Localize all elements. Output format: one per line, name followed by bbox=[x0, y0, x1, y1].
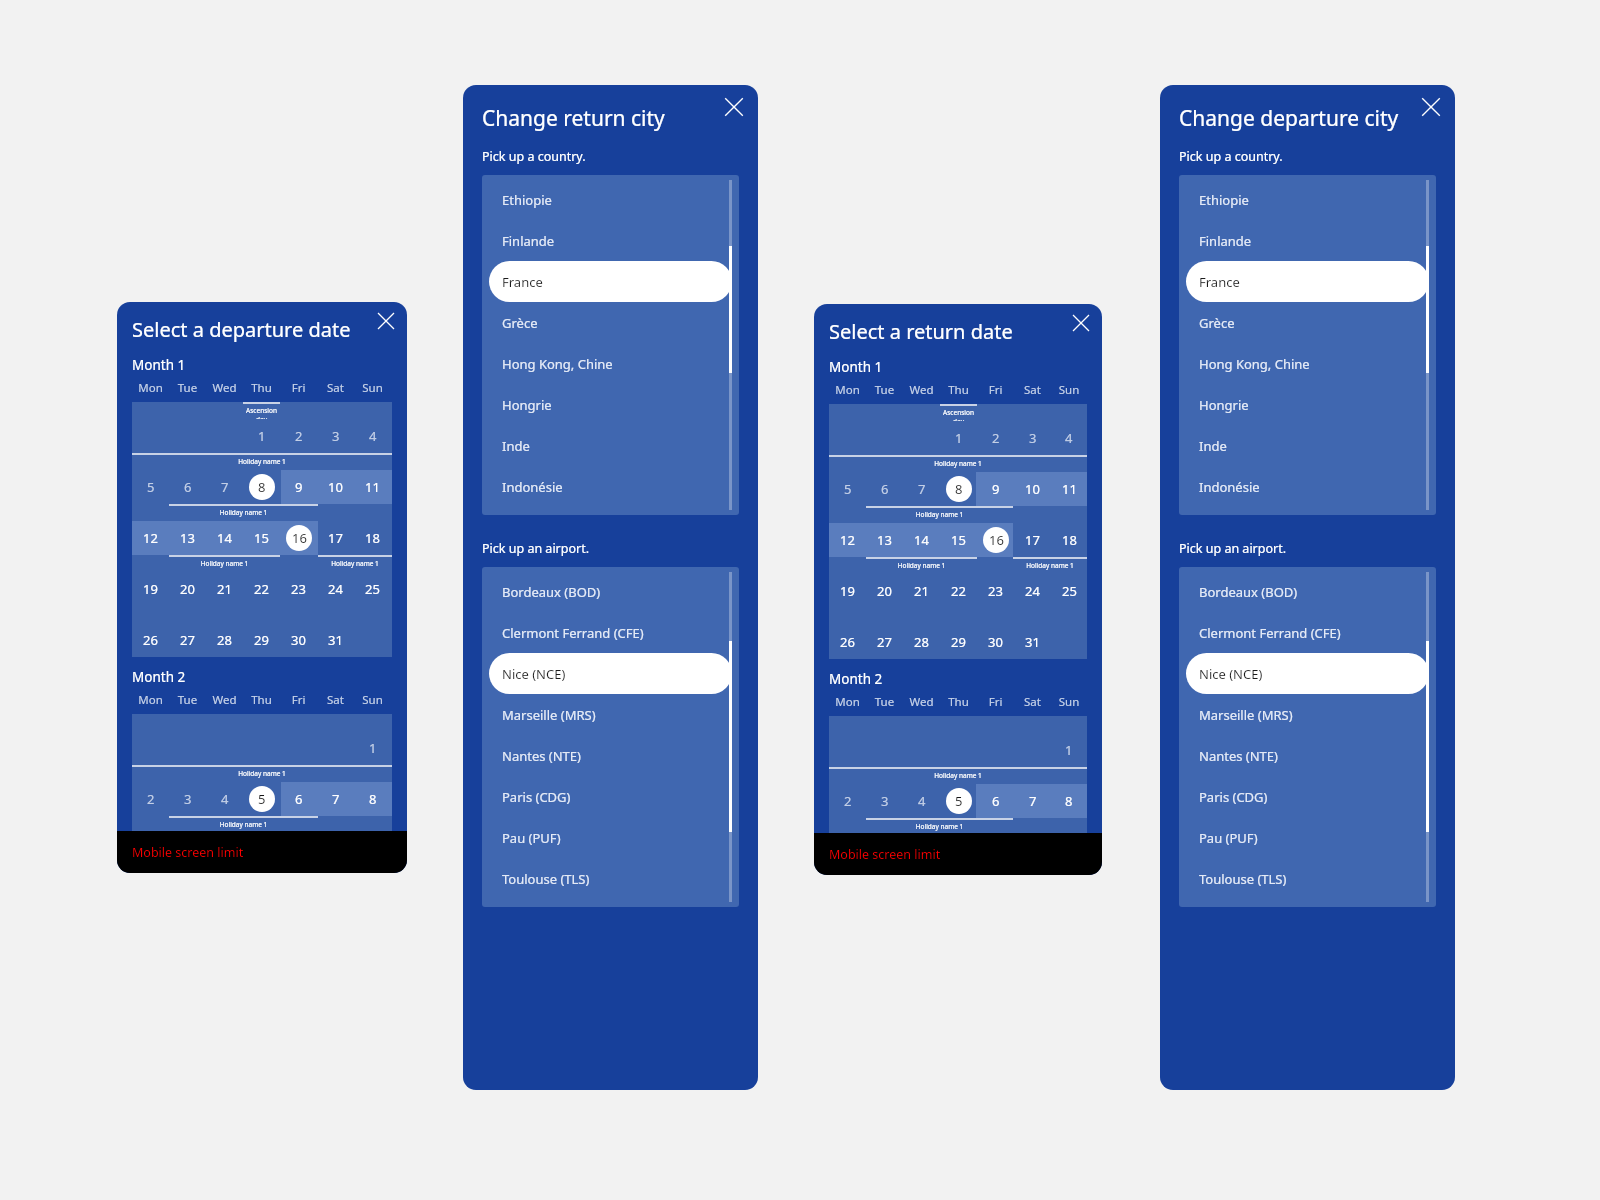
button[interactable]: 10 bbox=[169, 833, 206, 867]
button[interactable]: 24 bbox=[317, 572, 354, 606]
button[interactable]: Marseille (MRS) bbox=[482, 694, 739, 735]
button[interactable]: Ethiopie bbox=[482, 179, 739, 220]
button[interactable]: 7 bbox=[317, 782, 354, 816]
button[interactable]: 5 bbox=[243, 782, 280, 816]
button[interactable]: 10 bbox=[866, 835, 903, 869]
button[interactable]: 9 bbox=[829, 835, 866, 869]
button[interactable]: 8 bbox=[1051, 784, 1087, 818]
button[interactable]: 8 bbox=[940, 472, 977, 506]
button[interactable]: Hong Kong, Chine bbox=[1179, 343, 1436, 384]
button[interactable]: Paris (CDG) bbox=[482, 776, 739, 817]
button[interactable]: 11 bbox=[903, 835, 940, 869]
button[interactable]: 12 bbox=[132, 521, 169, 555]
button[interactable]: 21 bbox=[903, 574, 940, 608]
button[interactable]: 19 bbox=[829, 574, 866, 608]
button[interactable]: 5 bbox=[829, 472, 866, 506]
button[interactable]: 8 bbox=[243, 470, 280, 504]
button[interactable]: 30 bbox=[977, 625, 1014, 659]
button[interactable]: 11 bbox=[354, 470, 391, 504]
button[interactable]: France bbox=[489, 261, 732, 302]
button[interactable]: 1 bbox=[354, 731, 391, 765]
button[interactable]: 7 bbox=[1014, 784, 1051, 818]
button[interactable]: Pau (PUF) bbox=[482, 817, 739, 858]
button[interactable]: 27 bbox=[866, 625, 903, 659]
button[interactable]: 26 bbox=[132, 623, 169, 657]
button[interactable]: 9 bbox=[280, 470, 317, 504]
button[interactable]: Hong Kong, Chine bbox=[482, 343, 739, 384]
button[interactable]: 5 bbox=[132, 470, 169, 504]
button[interactable]: 23 bbox=[280, 572, 317, 606]
button[interactable]: Clermont Ferrand (CFE) bbox=[482, 612, 739, 653]
button[interactable]: Nice (NCE) bbox=[1186, 653, 1429, 694]
button[interactable]: 1 bbox=[1051, 733, 1087, 767]
button[interactable]: 4 bbox=[206, 782, 243, 816]
button[interactable]: Paris (CDG) bbox=[1179, 776, 1436, 817]
button[interactable]: 2 bbox=[977, 421, 1014, 455]
button[interactable]: 10 bbox=[1014, 472, 1051, 506]
button[interactable]: 3 bbox=[866, 784, 903, 818]
button[interactable]: 6 bbox=[977, 784, 1014, 818]
button[interactable]: Hongrie bbox=[1179, 384, 1436, 425]
button[interactable]: 31 bbox=[1014, 625, 1051, 659]
button[interactable]: 9 bbox=[977, 472, 1014, 506]
button[interactable]: Ethiopie bbox=[1179, 179, 1436, 220]
button[interactable]: Indonésie bbox=[482, 466, 739, 507]
button[interactable]: 10 bbox=[317, 470, 354, 504]
button[interactable]: Bordeaux (BOD) bbox=[1179, 571, 1436, 612]
button[interactable]: 24 bbox=[1014, 574, 1051, 608]
button[interactable]: Close bbox=[370, 305, 402, 337]
button[interactable]: 15 bbox=[243, 521, 280, 555]
button[interactable]: Grèce bbox=[1179, 302, 1436, 343]
button[interactable]: Finlande bbox=[1179, 220, 1436, 261]
button[interactable]: 2 bbox=[132, 782, 169, 816]
button[interactable]: 14 bbox=[903, 523, 940, 557]
button[interactable]: Indonésie bbox=[1179, 466, 1436, 507]
button[interactable]: 4 bbox=[1051, 421, 1087, 455]
button[interactable]: 15 bbox=[940, 523, 977, 557]
button[interactable]: Finlande bbox=[482, 220, 739, 261]
button[interactable]: Marseille (MRS) bbox=[1179, 694, 1436, 735]
button[interactable]: Grèce bbox=[482, 302, 739, 343]
button[interactable]: Close bbox=[717, 90, 751, 124]
button[interactable]: 18 bbox=[354, 521, 391, 555]
button[interactable]: Pau (PUF) bbox=[1179, 817, 1436, 858]
button[interactable]: 17 bbox=[1014, 523, 1051, 557]
button[interactable]: 9 bbox=[132, 833, 169, 867]
button[interactable]: Toulouse (TLS) bbox=[482, 858, 739, 899]
button[interactable]: 4 bbox=[354, 419, 391, 453]
button[interactable]: 3 bbox=[317, 419, 354, 453]
button[interactable]: Nice (NCE) bbox=[489, 653, 732, 694]
button[interactable]: 16 bbox=[977, 523, 1014, 557]
button[interactable]: Nantes (NTE) bbox=[1179, 735, 1436, 776]
button[interactable]: 6 bbox=[169, 470, 206, 504]
button[interactable]: 11 bbox=[206, 833, 243, 867]
button[interactable]: 1 bbox=[243, 419, 280, 453]
button[interactable]: Inde bbox=[482, 425, 739, 466]
button[interactable]: 6 bbox=[866, 472, 903, 506]
button[interactable]: 22 bbox=[940, 574, 977, 608]
button[interactable]: 7 bbox=[206, 470, 243, 504]
button[interactable]: 5 bbox=[940, 784, 977, 818]
